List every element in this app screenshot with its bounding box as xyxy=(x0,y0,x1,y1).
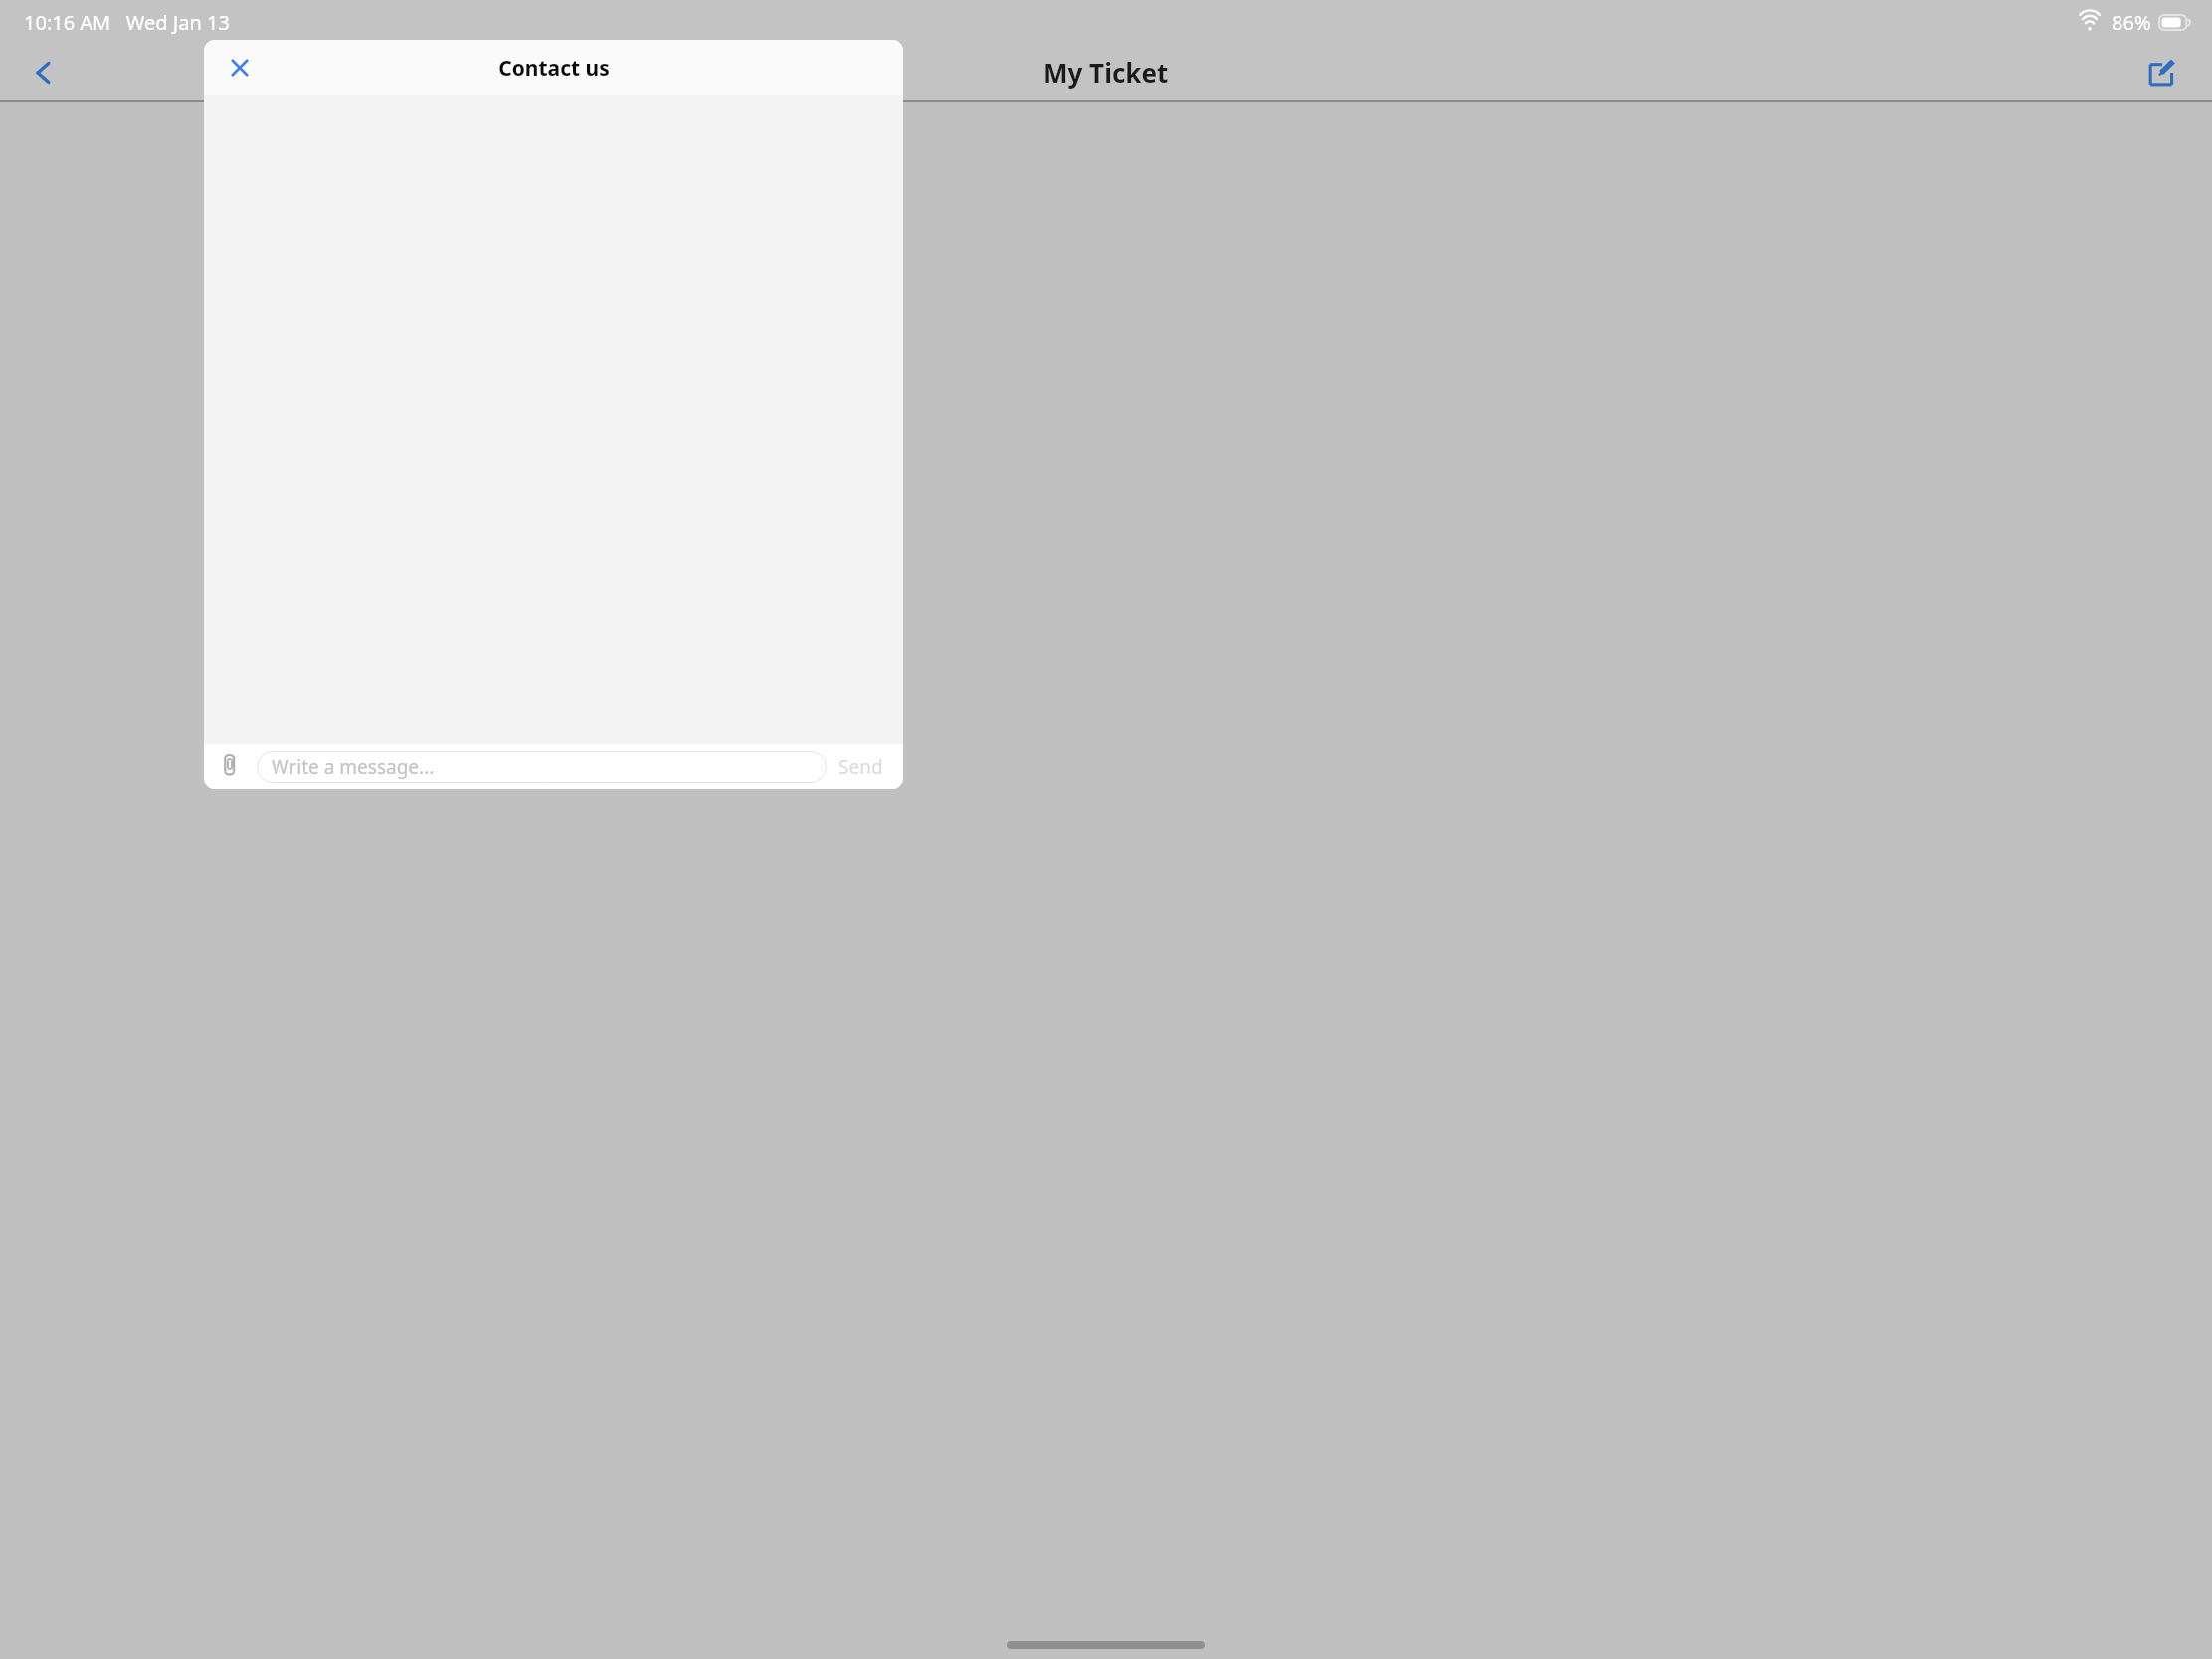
staticText: Contact us xyxy=(498,54,610,83)
staticText: 10:16 AM Wed Jan 13 xyxy=(24,9,230,36)
button[interactable]: Send xyxy=(827,748,895,786)
button[interactable]: Back xyxy=(16,45,72,100)
staticText: My Ticket xyxy=(1043,55,1169,90)
button[interactable]: Attach file xyxy=(212,748,250,786)
staticText: Write a message... xyxy=(272,754,435,780)
staticText: Send xyxy=(838,754,883,780)
button[interactable]: Write a message... xyxy=(257,751,827,783)
staticText: 86% xyxy=(2112,9,2151,36)
button[interactable]: Close xyxy=(216,44,264,92)
button[interactable]: Compose new message xyxy=(2134,45,2190,100)
